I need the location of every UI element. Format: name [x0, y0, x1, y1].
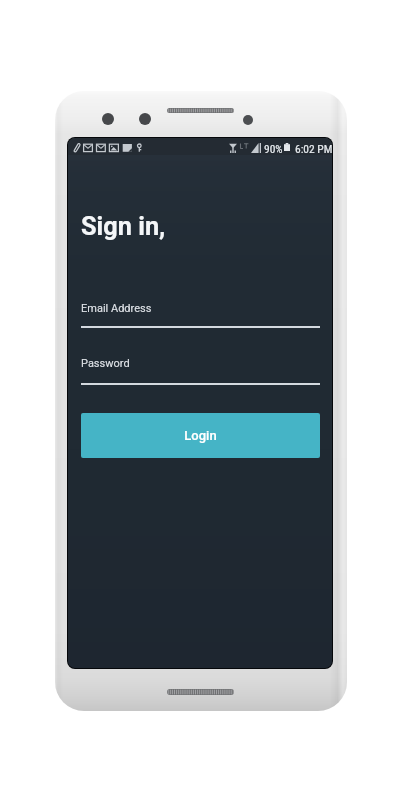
- staticText: Sign in,: [81, 212, 166, 242]
- staticText: Password: [81, 357, 130, 370]
- staticText: 90%: [264, 142, 283, 155]
- staticText: Email Address: [81, 302, 152, 315]
- staticText: Login: [184, 428, 217, 443]
- staticText: 6:02 PM: [295, 142, 332, 155]
- button[interactable]: Login: [81, 413, 320, 458]
